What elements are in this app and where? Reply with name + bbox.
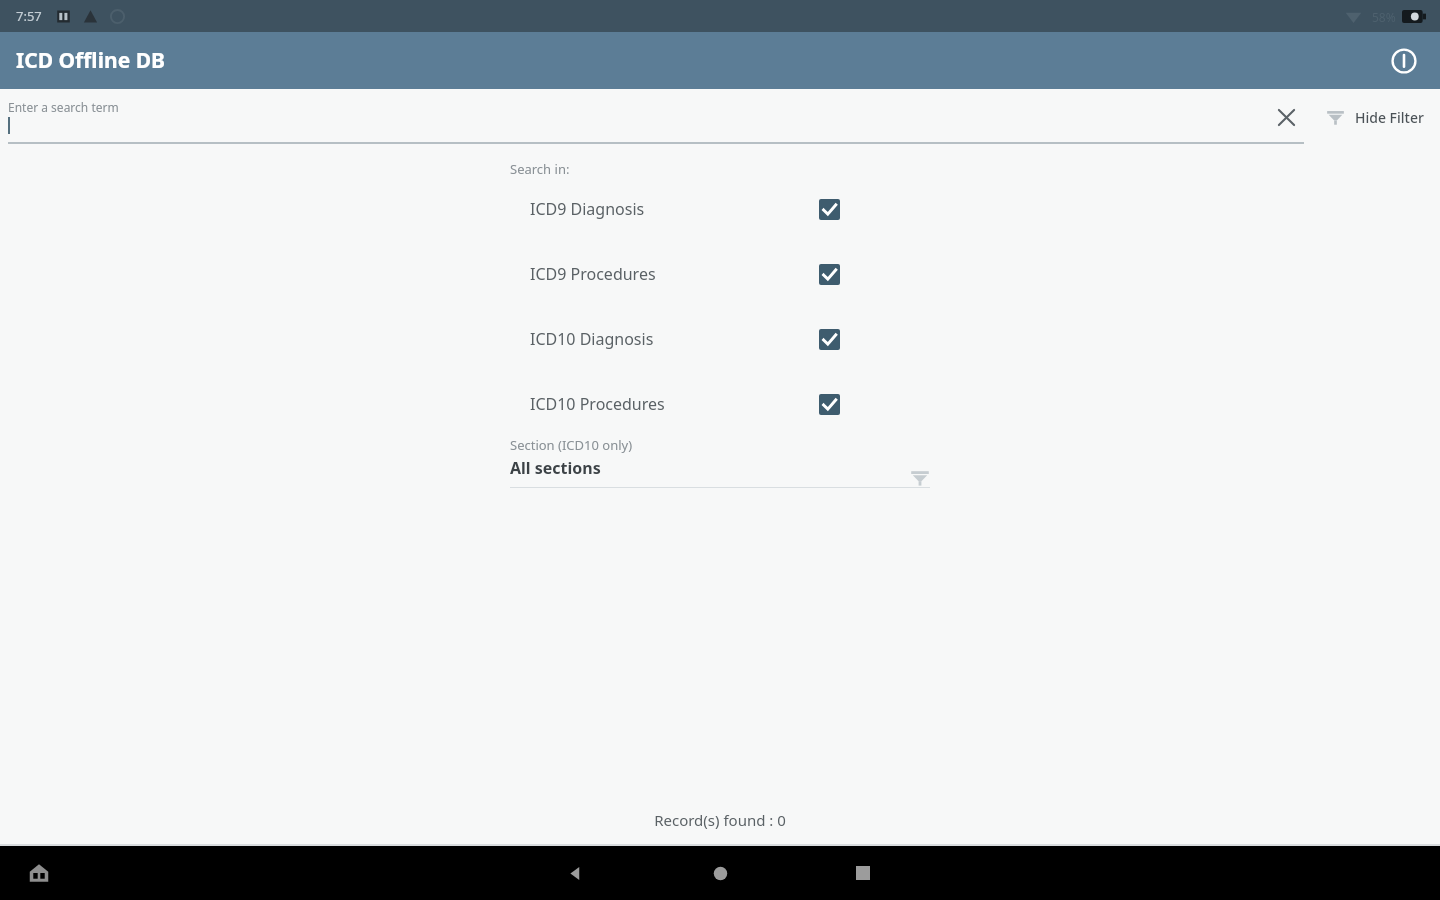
staticText: ICD9 Procedures (530, 263, 656, 285)
button[interactable]: Hide Filter (1322, 100, 1428, 135)
button[interactable]: ICD10 Procedures (510, 393, 840, 415)
staticText: Section (ICD10 only) (510, 436, 633, 454)
staticText: Search in: (510, 160, 570, 178)
button[interactable]: Back (551, 849, 599, 897)
staticText: ICD10 Procedures (530, 393, 665, 415)
staticText: Record(s) found : 0 (654, 810, 786, 830)
button[interactable]: About (1380, 37, 1428, 85)
button[interactable]: Section (ICD10 only) (510, 436, 930, 488)
staticText: Hide Filter (1355, 108, 1424, 127)
staticText: Enter a search term (8, 99, 119, 115)
button[interactable]: Recent apps (839, 849, 887, 897)
staticText: 58% (1372, 9, 1396, 25)
button[interactable]: Clear search (1264, 95, 1308, 139)
staticText: ICD Offline DB (16, 46, 166, 75)
button[interactable]: ICD9 Procedures (510, 263, 840, 285)
button[interactable]: Home screen shortcut (18, 852, 60, 894)
button[interactable]: Home (696, 849, 744, 897)
button[interactable]: ICD9 Diagnosis (510, 198, 840, 220)
button[interactable]: Enter a search term (8, 99, 119, 134)
staticText: ICD10 Diagnosis (530, 328, 654, 350)
button[interactable]: ICD10 Diagnosis (510, 328, 840, 350)
staticText: 7:57 (16, 7, 42, 25)
staticText: All sections (510, 457, 601, 479)
staticText: ICD9 Diagnosis (530, 198, 645, 220)
